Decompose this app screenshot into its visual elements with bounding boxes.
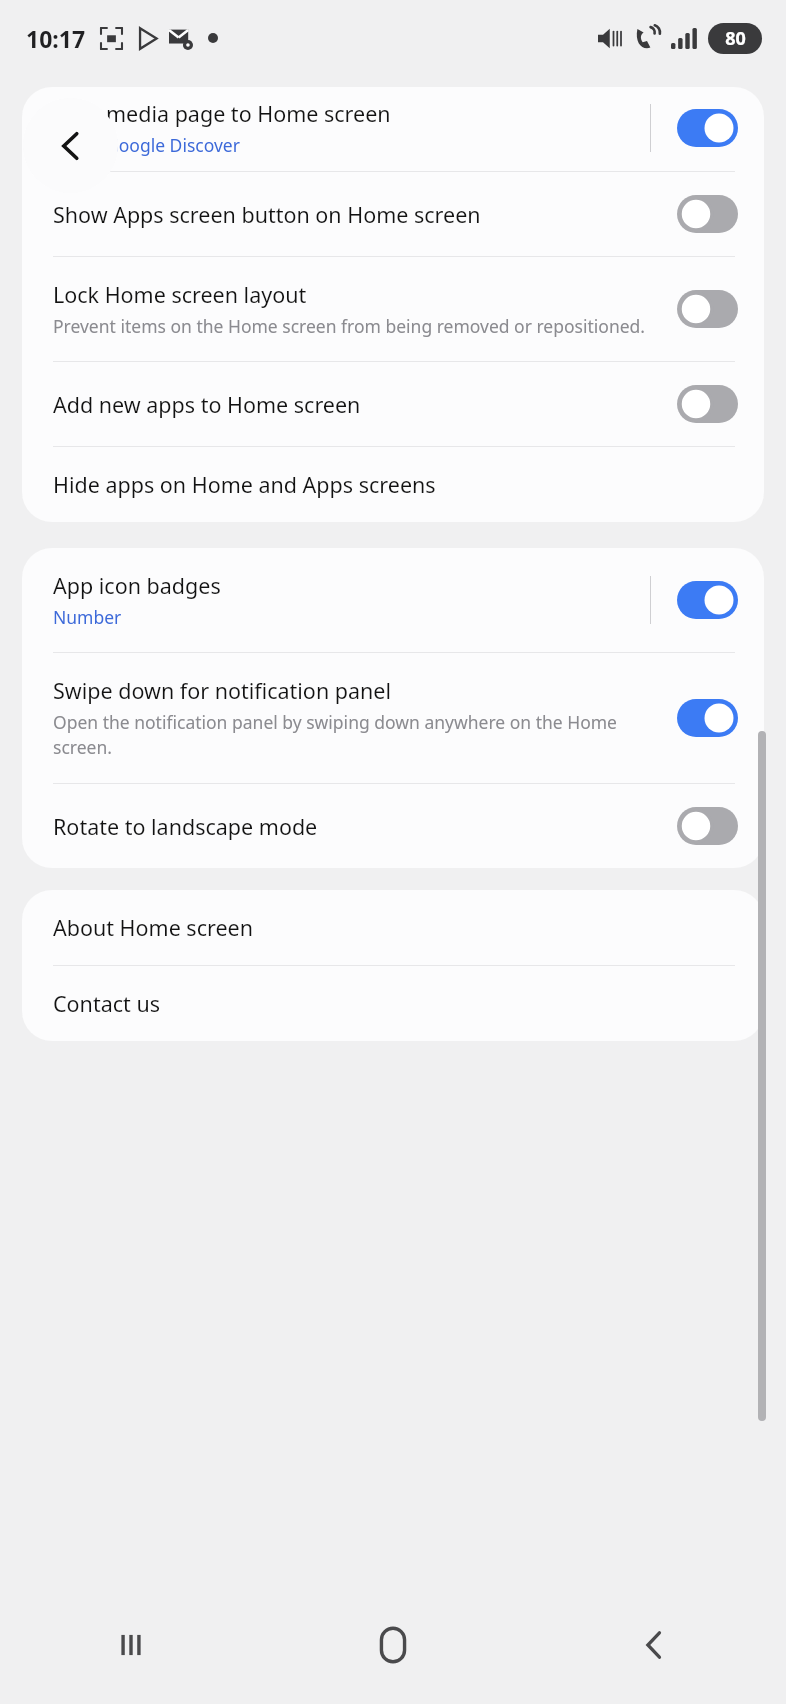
button[interactable]: Show Apps screen button on Home screen [22,172,764,256]
staticText: Google Discover [106,133,240,157]
staticText: Contact us [53,989,160,1018]
button[interactable]: Toggle off [677,195,738,233]
button[interactable]: Lock Home screen layout [22,257,764,361]
staticText: App icon badges [53,571,221,600]
button[interactable]: Add new apps to Home screen [22,362,764,446]
button[interactable]: Toggle on [677,109,738,147]
staticText: 10:17 [26,23,86,54]
button[interactable]: Toggle off [677,807,738,845]
button[interactable]: Toggle off [677,385,738,423]
button[interactable]: App icon badges [22,548,764,652]
button[interactable]: Swipe down for notification panel [22,653,764,783]
staticText: Prevent items on the Home screen from be… [53,314,646,338]
staticText: media page to Home screen [106,99,391,128]
button[interactable]: Rotate to landscape mode [22,784,764,868]
button[interactable]: media page to Home screen [22,87,764,171]
staticText: Lock Home screen layout [53,280,307,309]
button[interactable]: Home [262,1586,524,1704]
button[interactable]: Toggle off [677,290,738,328]
button[interactable]: Recents [0,1586,262,1704]
staticText: Hide apps on Home and Apps screens [53,470,436,499]
staticText: Rotate to landscape mode [53,812,318,841]
staticText: About Home screen [53,913,253,942]
button[interactable]: Hide apps on Home and Apps screens [22,447,764,522]
button[interactable]: Back [524,1586,786,1704]
staticText: 80 [725,26,746,51]
staticText: Add new apps to Home screen [53,390,361,419]
staticText: Number [53,605,122,629]
staticText: Show Apps screen button on Home screen [53,200,481,229]
staticText: Open the notification panel by swiping d… [53,710,663,760]
button[interactable]: Back [23,98,118,193]
button[interactable]: About Home screen [22,890,764,965]
button[interactable]: Toggle on [677,699,738,737]
button[interactable]: Toggle on [677,581,738,619]
button[interactable]: Contact us [22,966,764,1041]
staticText: Swipe down for notification panel [53,676,392,705]
